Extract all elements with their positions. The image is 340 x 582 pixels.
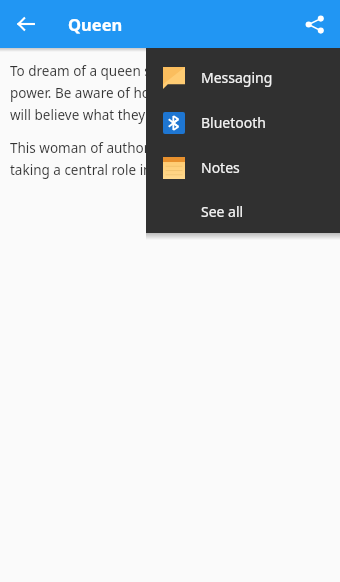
staticText: Messaging [201,68,273,87]
button[interactable]: Share [292,2,336,46]
staticText: Notes [201,158,240,177]
button[interactable]: Bluetooth [146,100,340,145]
staticText: To dream of a queen suggests a connectio… [10,62,330,124]
staticText: Bluetooth [201,113,266,132]
button[interactable]: Back [4,2,48,46]
staticText: See all [201,202,244,221]
button[interactable]: Notes [146,145,340,190]
button[interactable]: Messaging [146,55,340,100]
button[interactable]: See all [146,190,340,233]
staticText: Queen [68,13,123,35]
staticText: This woman of authority may be awakening… [10,139,330,179]
